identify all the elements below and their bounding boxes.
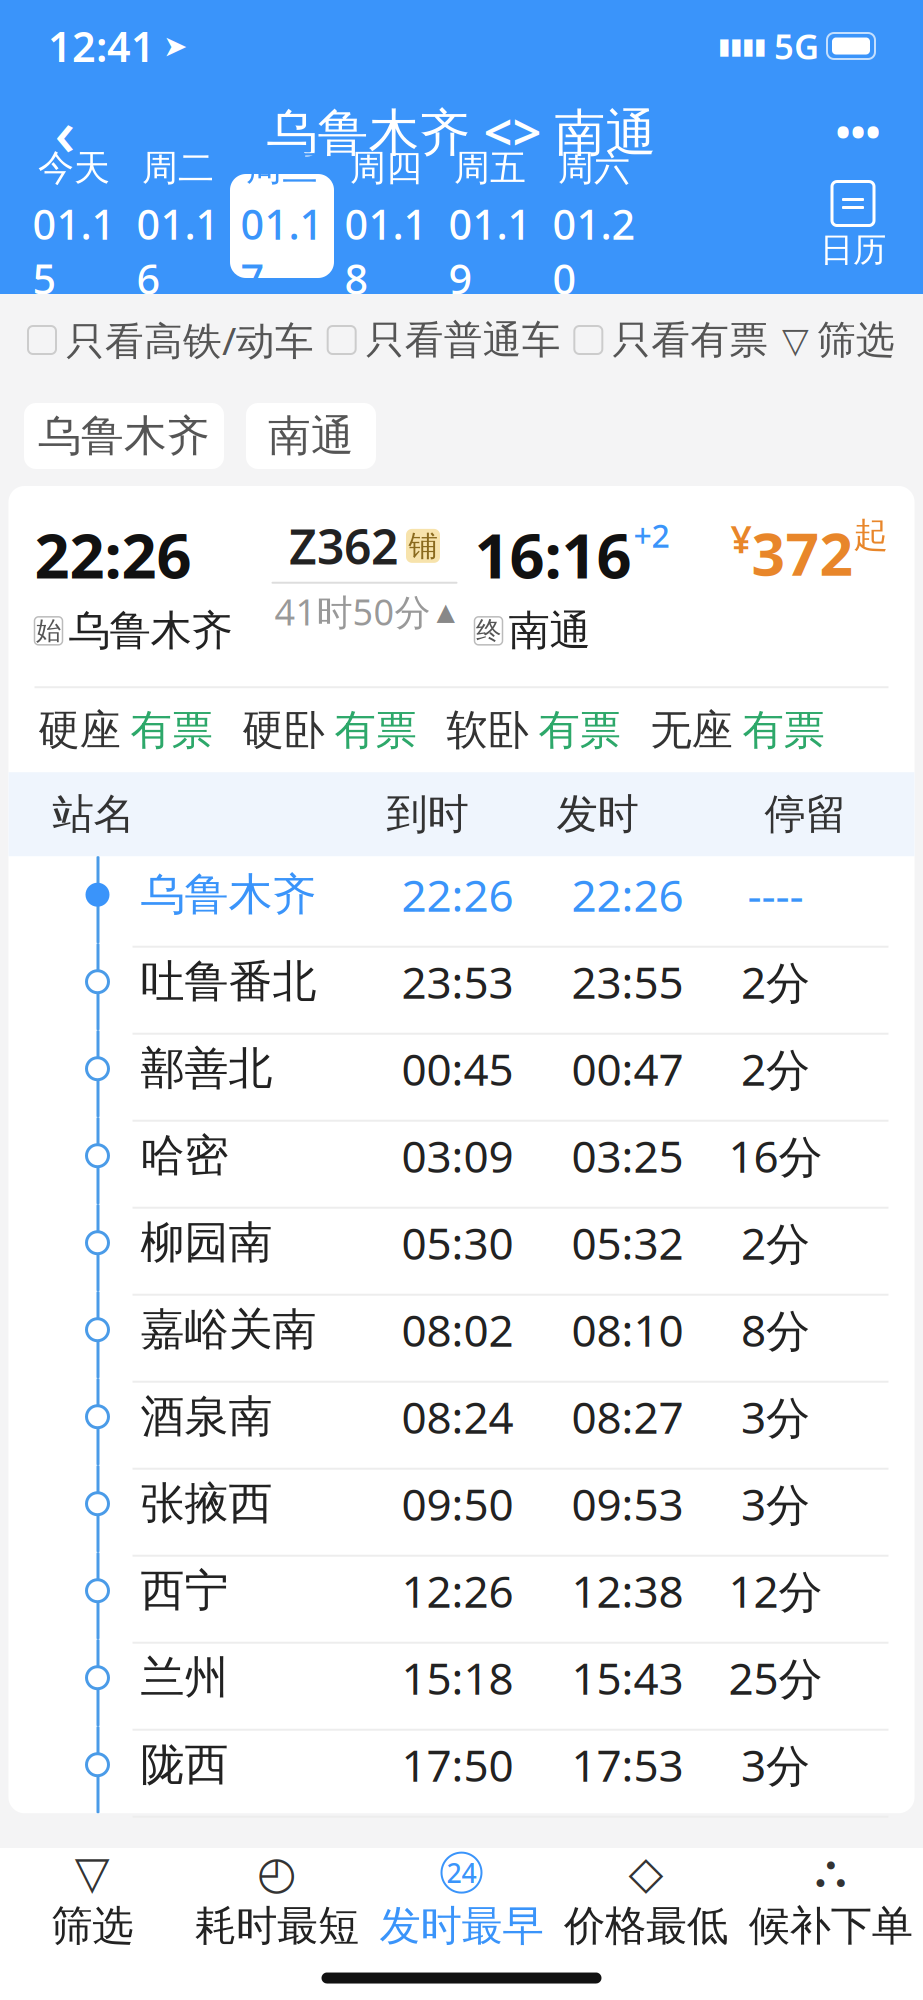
staticText: 周四 — [350, 146, 422, 190]
staticText: 3分 — [741, 1474, 810, 1533]
staticText: 372 — [751, 514, 853, 592]
staticText: ‹ — [54, 88, 75, 173]
staticText: 23:53 — [401, 952, 513, 1011]
button[interactable]: ◇ — [554, 1848, 738, 1956]
button[interactable]: 今天 — [22, 174, 126, 278]
staticText: 哈密 — [140, 1129, 228, 1183]
staticText: 2分 — [741, 952, 810, 1011]
staticText: 01.17 — [240, 196, 323, 306]
button[interactable]: 南通 — [246, 403, 376, 469]
staticText: 只看有票 — [612, 316, 768, 364]
button[interactable]: 只看高铁/动车 — [28, 314, 314, 366]
staticText: 00:47 — [571, 1039, 683, 1098]
button[interactable]: 更多 — [813, 95, 903, 167]
staticText: 日历 — [820, 229, 886, 270]
button[interactable]: 柳园南 — [8, 1204, 914, 1291]
button[interactable]: 酒泉南 — [8, 1378, 914, 1465]
staticText: 08:10 — [571, 1300, 683, 1359]
staticText: 08:27 — [571, 1387, 683, 1446]
button[interactable]: 周三 — [230, 174, 334, 278]
button[interactable]: 哈密 — [8, 1117, 914, 1204]
button[interactable]: ⛬ — [738, 1848, 923, 1956]
staticText: 鄯善北 — [140, 1042, 272, 1096]
staticText: 17:50 — [401, 1735, 513, 1794]
button[interactable]: 只看有票 — [574, 316, 768, 364]
button[interactable]: 陇西 — [8, 1726, 914, 1813]
staticText: 发时最早 — [379, 1901, 543, 1951]
button[interactable]: ▽ — [0, 1848, 185, 1956]
staticText: ••• — [835, 104, 880, 157]
button[interactable]: 周六 — [542, 174, 646, 278]
staticText: 价格最低 — [564, 1901, 728, 1951]
staticText: 今天 — [38, 146, 110, 190]
staticText: ⛬ — [815, 1850, 847, 1895]
staticText: 酒泉南 — [140, 1390, 272, 1444]
button[interactable]: 只看普通车 — [328, 316, 561, 364]
staticText: 只看普通车 — [366, 316, 561, 364]
staticText: 12:26 — [401, 1561, 513, 1620]
staticText: 00:45 — [401, 1039, 513, 1098]
staticText: 周五 — [454, 146, 526, 190]
staticText: 16分 — [728, 1126, 822, 1185]
staticText: 01.15 — [32, 196, 115, 306]
button[interactable]: 鄯善北 — [8, 1030, 914, 1117]
button[interactable]: 乌鲁木齐 — [24, 403, 224, 469]
staticText: 周三 — [246, 146, 318, 190]
staticText: 41时50分 — [274, 588, 430, 635]
staticText: ¥ — [730, 514, 751, 564]
button[interactable]: ▽ — [782, 316, 895, 364]
button[interactable]: 24 — [369, 1848, 554, 1956]
staticText: 吐鲁番北 — [140, 955, 316, 1009]
staticText: 01.18 — [344, 196, 427, 306]
button[interactable]: 周二 — [126, 174, 230, 278]
staticText: 南通 — [268, 410, 354, 462]
staticText: 12:38 — [571, 1561, 683, 1620]
staticText: 3分 — [741, 1387, 810, 1446]
button[interactable]: 嘉峪关南 — [8, 1291, 914, 1378]
button[interactable]: ◴ — [185, 1848, 369, 1956]
staticText: 南通 — [508, 605, 590, 656]
staticText: 周六 — [558, 146, 630, 190]
staticText: 5G — [774, 23, 819, 69]
staticText: 12分 — [728, 1561, 822, 1620]
button[interactable]: 返回 — [20, 95, 110, 167]
button[interactable]: 日历 — [805, 174, 901, 278]
staticText: 有票 — [130, 705, 212, 756]
staticText: +2 — [633, 514, 669, 556]
staticText: ▽ — [782, 320, 809, 360]
button[interactable]: 兰州 — [8, 1639, 914, 1726]
button[interactable]: 吐鲁番北 — [8, 943, 914, 1030]
button[interactable]: 张掖西 — [8, 1465, 914, 1552]
staticText: 只看高铁/动车 — [66, 314, 314, 366]
staticText: 无座 — [650, 705, 732, 756]
staticText: 乌鲁木齐 — [38, 410, 210, 462]
button[interactable]: 乌鲁木齐 — [8, 856, 914, 943]
staticText: 03:09 — [401, 1126, 513, 1185]
staticText: 乌鲁木齐 — [140, 868, 316, 922]
button[interactable]: 周五 — [438, 174, 542, 278]
button[interactable]: 西宁 — [8, 1552, 914, 1639]
staticText: 08:24 — [401, 1387, 513, 1446]
staticText: 05:30 — [401, 1213, 513, 1272]
staticText: 22:26 — [571, 865, 683, 924]
staticText: ▲ — [436, 598, 454, 625]
staticText: 22:26 — [401, 865, 513, 924]
staticText: 22:26 — [34, 514, 191, 595]
staticText: 候补下单 — [749, 1901, 913, 1951]
staticText: 柳园南 — [140, 1216, 272, 1270]
staticText: 有票 — [334, 705, 416, 756]
staticText: 硬座 — [38, 705, 120, 756]
staticText: 2分 — [741, 1213, 810, 1272]
staticText: 铺 — [408, 528, 437, 564]
staticText: 硬卧 — [242, 705, 324, 756]
button[interactable]: 周四 — [334, 174, 438, 278]
staticText: 12:41 — [48, 19, 155, 73]
staticText: 3分 — [741, 1735, 810, 1794]
staticText: 09:50 — [401, 1474, 513, 1533]
staticText: ▮▮▮▮ — [718, 33, 766, 59]
staticText: 03:25 — [571, 1126, 683, 1185]
staticText: 发时 — [556, 789, 638, 840]
staticText: 到时 — [386, 789, 468, 840]
staticText: 站名 — [52, 789, 134, 840]
staticText: 乌鲁木齐 — [68, 605, 232, 656]
